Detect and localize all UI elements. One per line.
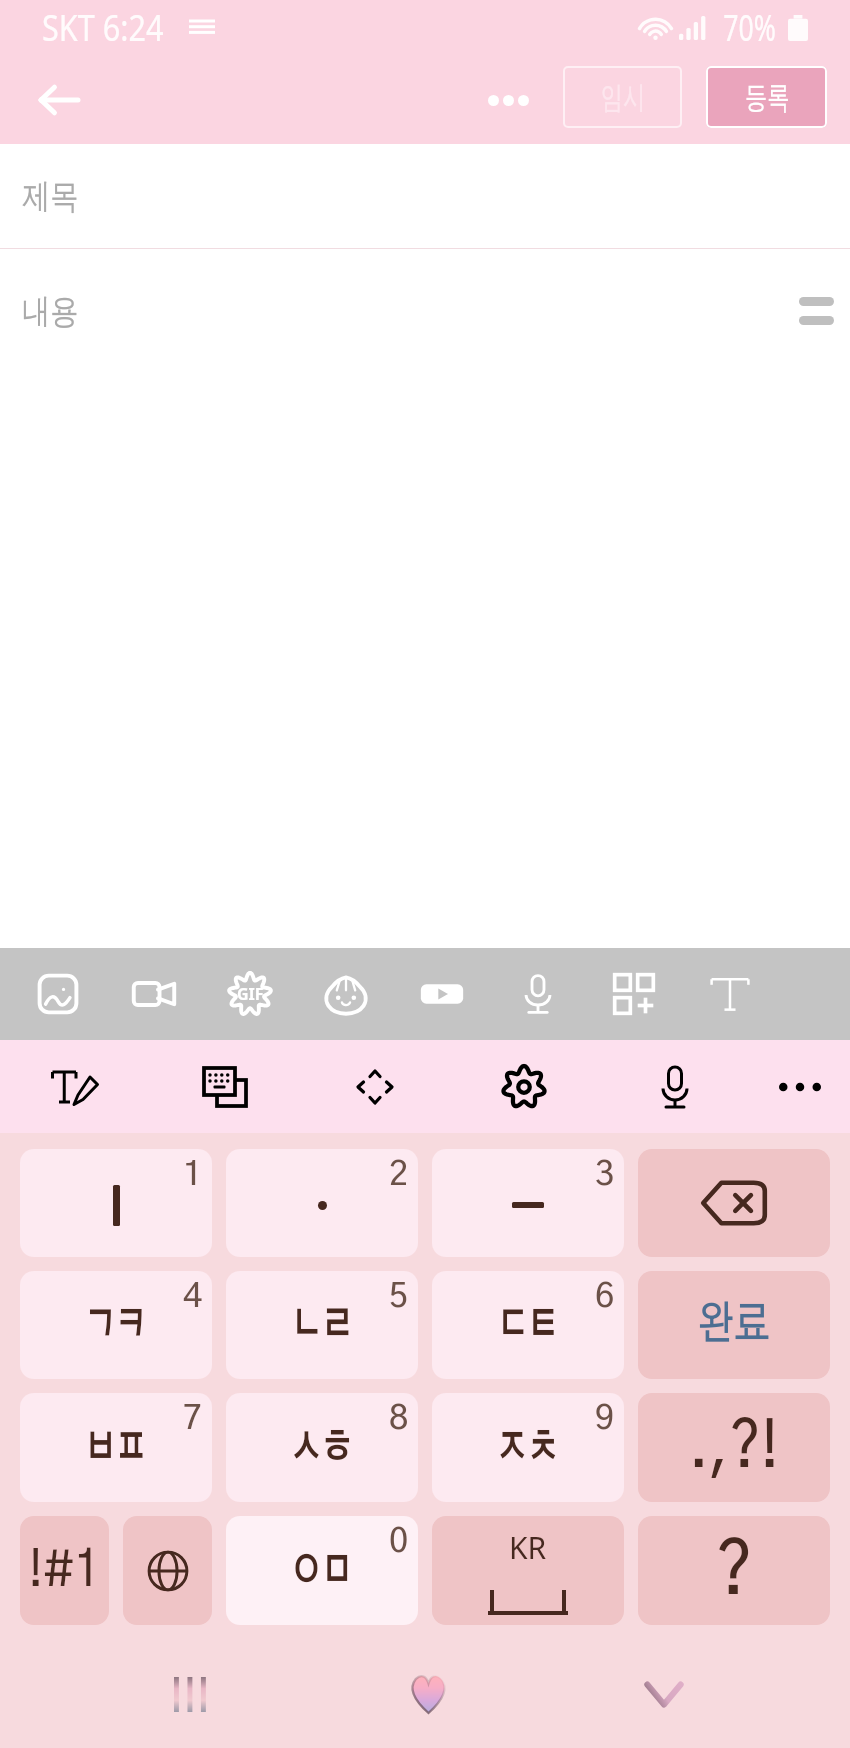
button[interactable]: Handwriting <box>27 1040 123 1133</box>
button[interactable]: 0 <box>226 1516 418 1625</box>
button[interactable]: 9 <box>432 1393 624 1502</box>
staticText: 2 <box>389 1158 409 1192</box>
staticText: GIF <box>237 983 264 1005</box>
button[interactable]: Photo <box>10 948 106 1040</box>
button[interactable]: ? <box>638 1516 830 1625</box>
button[interactable]: Home <box>371 1640 485 1748</box>
staticText: 5 <box>389 1280 409 1314</box>
button[interactable]: Dot <box>226 1149 418 1257</box>
button[interactable]: 5 <box>226 1271 418 1379</box>
button[interactable]: More options <box>468 65 548 135</box>
button[interactable]: Space <box>432 1516 624 1625</box>
staticText: ? <box>715 1534 753 1608</box>
button[interactable]: Move cursor <box>327 1040 423 1133</box>
button[interactable]: Horizontal stroke <box>432 1149 624 1257</box>
button[interactable]: 8 <box>226 1393 418 1502</box>
staticText: ㄴㄹ <box>291 1304 353 1346</box>
button[interactable]: Change language <box>123 1516 212 1625</box>
button[interactable]: Backspace <box>638 1149 830 1257</box>
button[interactable]: Voice input <box>627 1040 723 1133</box>
button[interactable]: Sticker <box>298 948 394 1040</box>
staticText: ㅈㅊ <box>497 1427 559 1469</box>
staticText: KR <box>509 1527 547 1568</box>
button[interactable]: GIF <box>202 948 298 1040</box>
staticText: ㄱㅋ <box>85 1304 147 1346</box>
staticText: SKT 6:24 <box>42 3 164 52</box>
staticText: 6 <box>595 1280 615 1314</box>
button[interactable]: Keyboard layout <box>177 1040 273 1133</box>
staticText: 완료 <box>697 1302 770 1348</box>
button[interactable]: 7 <box>20 1393 212 1502</box>
staticText: ㅂㅍ <box>85 1427 147 1469</box>
button[interactable]: 완료 <box>638 1271 830 1379</box>
staticText: 등록 <box>745 78 789 117</box>
staticText: 3 <box>595 1158 615 1192</box>
button[interactable]: 제목 <box>0 144 850 248</box>
button[interactable]: 임시 <box>563 66 682 128</box>
staticText: 내용 <box>22 290 78 333</box>
button[interactable]: Back <box>17 58 101 142</box>
button[interactable]: Recent apps <box>134 1640 248 1748</box>
button[interactable]: Text <box>682 948 778 1040</box>
staticText: 4 <box>183 1280 203 1314</box>
staticText: 1 <box>183 1158 203 1192</box>
staticText: 0 <box>389 1525 409 1559</box>
staticText: ㅇㅁ <box>291 1550 353 1592</box>
staticText: 70% <box>723 3 777 52</box>
button[interactable]: YouTube <box>394 948 490 1040</box>
staticText: 임시 <box>601 78 645 117</box>
button[interactable]: Text formatting <box>799 297 834 325</box>
button[interactable]: More options <box>752 1040 848 1133</box>
button[interactable]: Vertical stroke <box>20 1149 212 1257</box>
staticText: 9 <box>595 1402 615 1436</box>
button[interactable]: .,?! <box>638 1393 830 1502</box>
button[interactable]: Templates <box>586 948 682 1040</box>
button[interactable]: Back <box>607 1640 721 1748</box>
button[interactable]: 6 <box>432 1271 624 1379</box>
button[interactable]: Voice recording <box>490 948 586 1040</box>
staticText: 제목 <box>22 175 78 218</box>
staticText: !#1 <box>29 1546 100 1596</box>
staticText: 8 <box>389 1402 409 1436</box>
button[interactable]: Video <box>106 948 202 1040</box>
staticText: ㅅㅎ <box>291 1427 353 1469</box>
button[interactable]: 4 <box>20 1271 212 1379</box>
button[interactable]: 내용 <box>0 249 850 373</box>
staticText: 7 <box>183 1402 203 1436</box>
staticText: ㄷㅌ <box>497 1304 559 1346</box>
staticText: .,?! <box>689 1415 779 1480</box>
button[interactable]: !#1 <box>20 1516 109 1625</box>
button[interactable]: Settings <box>476 1040 572 1133</box>
button[interactable]: 등록 <box>706 66 827 128</box>
